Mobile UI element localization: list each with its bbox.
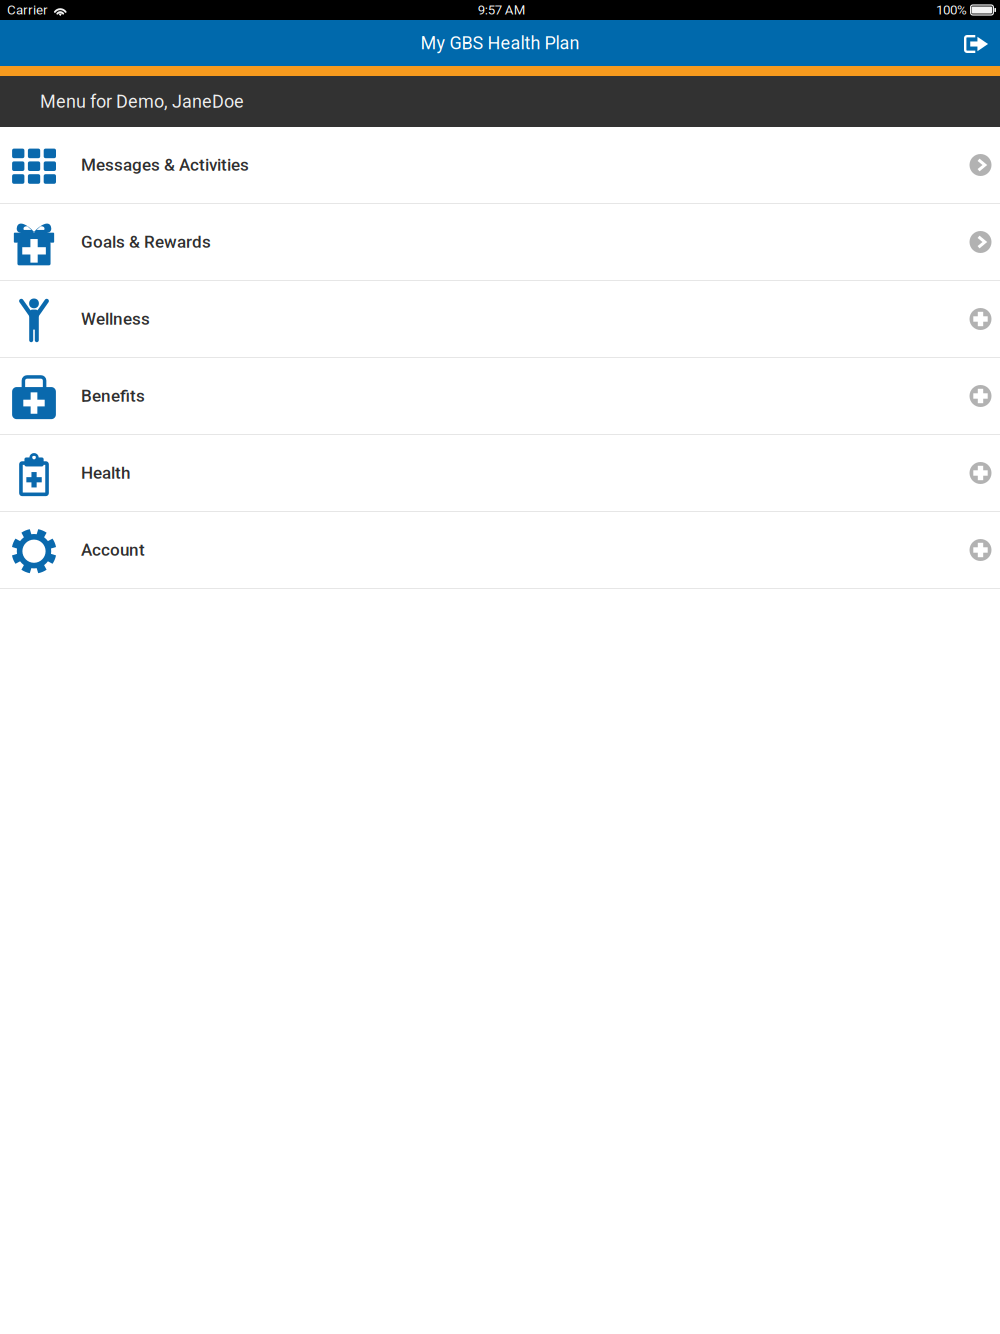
- staticText: Menu for Demo, JaneDoe: [40, 91, 244, 112]
- staticText: Goals & Rewards: [81, 232, 211, 252]
- staticText: Carrier: [7, 2, 48, 18]
- button[interactable]: Sign out: [948, 20, 1000, 66]
- staticText: My GBS Health Plan: [420, 32, 579, 54]
- staticText: Benefits: [81, 386, 145, 406]
- staticText: 9:57 AM: [478, 2, 526, 18]
- button[interactable]: Wellness: [0, 281, 1000, 358]
- button[interactable]: Messages & Activities: [0, 127, 1000, 204]
- button[interactable]: Benefits: [0, 358, 1000, 435]
- staticText: 100%: [936, 2, 967, 18]
- staticText: Account: [81, 540, 145, 560]
- staticText: Health: [81, 463, 130, 483]
- staticText: Wellness: [81, 309, 150, 329]
- button[interactable]: Account: [0, 512, 1000, 589]
- button[interactable]: Health: [0, 435, 1000, 512]
- button[interactable]: Goals & Rewards: [0, 204, 1000, 281]
- staticText: Messages & Activities: [81, 155, 249, 175]
